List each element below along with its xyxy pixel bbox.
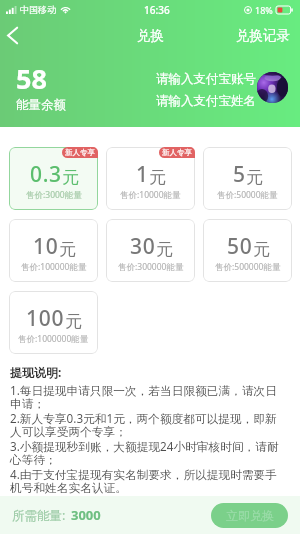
staticText: 元 [65, 311, 82, 332]
button[interactable]: 10 [9, 219, 98, 282]
staticText: 提现说明: [10, 364, 62, 380]
staticText: 18% [255, 4, 273, 16]
staticText: 售价:300000能量 [118, 261, 184, 273]
staticText: 售价:10000能量 [120, 189, 181, 201]
button[interactable]: 立即兑换 [211, 503, 288, 528]
staticText: 售价:50000能量 [217, 189, 278, 201]
staticText: 元 [246, 167, 263, 188]
button[interactable]: 请输入支付宝姓名 [156, 93, 256, 109]
staticText: 58 [16, 60, 47, 97]
staticText: 3000 [71, 506, 101, 524]
staticText: 16:36 [144, 3, 170, 17]
staticText: 10 [33, 232, 59, 261]
staticText: 元 [149, 167, 166, 188]
button[interactable]: Back [0, 19, 25, 52]
staticText: 售价:500000能量 [215, 261, 281, 273]
button[interactable]: 兑换记录 [236, 27, 290, 44]
staticText: 能量余额 [16, 97, 66, 113]
staticText: 售价:100000能量 [21, 261, 87, 273]
button[interactable]: 1 [106, 147, 195, 210]
staticText: 请输入支付宝姓名 [156, 93, 256, 109]
button[interactable]: 0.3 [9, 147, 98, 210]
button[interactable]: 5 [203, 147, 292, 210]
staticText: 元 [253, 239, 270, 260]
staticText: 元 [59, 239, 76, 260]
button[interactable]: User avatar [257, 72, 288, 103]
staticText: 元 [62, 167, 79, 188]
staticText: 中国移动 [20, 4, 56, 15]
staticText: 售价:1000000能量 [18, 333, 89, 345]
staticText: 兑换 [137, 27, 164, 44]
button[interactable]: 30 [106, 219, 195, 282]
staticText: 新人专享 [65, 148, 95, 157]
button[interactable]: 请输入支付宝账号 [156, 71, 256, 87]
staticText: 立即兑换 [226, 508, 274, 523]
staticText: 50 [227, 232, 253, 261]
staticText: 兑换记录 [236, 27, 290, 44]
staticText: 请输入支付宝账号 [156, 71, 256, 87]
staticText: 所需能量: [12, 507, 66, 524]
staticText: 1 [136, 160, 149, 189]
staticText: 新人专享 [162, 148, 192, 157]
staticText: 元 [156, 239, 173, 260]
button[interactable]: 50 [203, 219, 292, 282]
staticText: 5 [233, 160, 246, 189]
button[interactable]: 100 [9, 291, 98, 354]
staticText: 售价:3000能量 [26, 189, 82, 201]
staticText: 1.每日提现申请只限一次，若当日限额已满，请次日申请； 2.新人专享0.3元和1… [10, 382, 286, 496]
staticText: 0.3 [30, 160, 62, 189]
staticText: 100 [26, 304, 65, 333]
staticText: 30 [130, 232, 156, 261]
